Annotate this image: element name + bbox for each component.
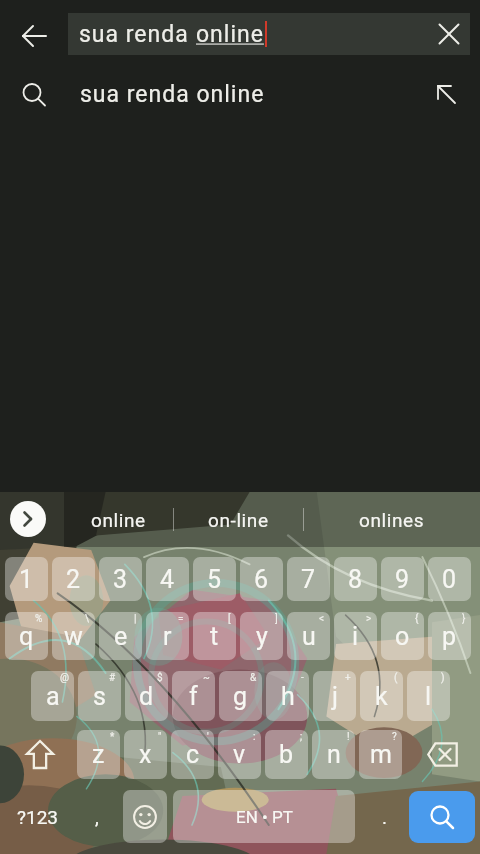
button[interactable]: j bbox=[313, 671, 356, 721]
button[interactable]: d bbox=[125, 671, 168, 721]
button[interactable]: sua renda bbox=[68, 13, 470, 55]
button[interactable]: 9 bbox=[381, 557, 424, 601]
button[interactable]: Back bbox=[10, 12, 58, 60]
button[interactable]: o bbox=[381, 612, 424, 660]
staticText: $ bbox=[157, 672, 163, 684]
staticText: d bbox=[139, 682, 154, 711]
button[interactable]: t bbox=[193, 612, 236, 660]
staticText: 0 bbox=[442, 565, 457, 594]
staticText: ; bbox=[300, 731, 303, 743]
button[interactable]: n bbox=[312, 730, 355, 779]
button[interactable]: sua renda online bbox=[0, 67, 480, 125]
button[interactable]: Search bbox=[409, 791, 475, 843]
staticText: 7 bbox=[301, 565, 316, 594]
button[interactable]: 7 bbox=[287, 557, 330, 601]
staticText: v bbox=[233, 740, 246, 769]
button[interactable]: EN • PT bbox=[173, 790, 355, 843]
button[interactable]: e bbox=[99, 612, 142, 660]
button[interactable]: y bbox=[240, 612, 283, 660]
button[interactable]: h bbox=[266, 671, 309, 721]
staticText: * bbox=[110, 731, 115, 743]
staticText: b bbox=[279, 740, 294, 769]
staticText: a bbox=[46, 682, 60, 711]
staticText: e bbox=[114, 622, 128, 651]
staticText: m bbox=[370, 740, 392, 769]
staticText: online bbox=[91, 509, 146, 531]
button[interactable]: b bbox=[265, 730, 308, 779]
button[interactable]: 1 bbox=[5, 557, 48, 601]
button[interactable]: g bbox=[219, 671, 262, 721]
staticText: online bbox=[196, 21, 264, 48]
staticText: | bbox=[134, 613, 137, 625]
button[interactable]: p bbox=[428, 612, 471, 660]
staticText: + bbox=[345, 672, 351, 684]
button[interactable]: 3 bbox=[99, 557, 142, 601]
button[interactable]: ?123 bbox=[5, 790, 71, 843]
button[interactable]: Emoji bbox=[123, 790, 167, 843]
staticText: \ bbox=[85, 613, 90, 625]
button[interactable]: s bbox=[78, 671, 121, 721]
staticText: ) bbox=[441, 672, 445, 684]
button[interactable]: onlines bbox=[303, 492, 480, 547]
staticText: ?123 bbox=[17, 806, 59, 828]
button[interactable]: c bbox=[171, 730, 214, 779]
button[interactable]: Backspace bbox=[409, 730, 475, 779]
button[interactable]: Clear bbox=[428, 13, 470, 55]
staticText: f bbox=[189, 682, 198, 711]
staticText: c bbox=[186, 740, 200, 769]
button[interactable]: l bbox=[407, 671, 450, 721]
staticText: onlines bbox=[359, 509, 425, 531]
button[interactable]: r bbox=[146, 612, 189, 660]
button[interactable]: 8 bbox=[334, 557, 377, 601]
staticText: g bbox=[233, 682, 248, 711]
button[interactable]: Insert suggestion bbox=[426, 74, 466, 114]
staticText: k bbox=[375, 682, 388, 711]
staticText: y bbox=[256, 622, 268, 651]
button[interactable]: . bbox=[364, 790, 406, 843]
staticText: @ bbox=[60, 672, 69, 684]
staticText: l bbox=[425, 682, 432, 711]
staticText: & bbox=[250, 672, 257, 684]
staticText: . bbox=[382, 806, 388, 828]
button[interactable]: More suggestions bbox=[10, 501, 46, 537]
staticText: w bbox=[64, 622, 83, 651]
staticText: ~ bbox=[203, 672, 210, 684]
staticText: j bbox=[332, 682, 338, 711]
staticText: 5 bbox=[207, 565, 222, 594]
button[interactable]: 4 bbox=[146, 557, 189, 601]
button[interactable]: u bbox=[287, 612, 330, 660]
button[interactable]: q bbox=[5, 612, 48, 660]
staticText: s bbox=[93, 682, 106, 711]
button[interactable]: a bbox=[31, 671, 74, 721]
button[interactable]: on-line bbox=[173, 492, 303, 547]
staticText: : bbox=[253, 731, 256, 743]
staticText: t bbox=[210, 622, 219, 651]
staticText: on-line bbox=[208, 509, 269, 531]
staticText: # bbox=[109, 672, 116, 684]
button[interactable]: v bbox=[218, 730, 261, 779]
button[interactable]: k bbox=[360, 671, 403, 721]
button[interactable]: 5 bbox=[193, 557, 236, 601]
staticText: ? bbox=[392, 731, 397, 743]
staticText: o bbox=[395, 622, 410, 651]
button[interactable]: x bbox=[124, 730, 167, 779]
button[interactable]: , bbox=[76, 790, 118, 843]
button[interactable]: w bbox=[52, 612, 95, 660]
staticText: 6 bbox=[254, 565, 269, 594]
staticText: ! bbox=[347, 731, 350, 743]
button[interactable]: online bbox=[64, 492, 173, 547]
staticText: sua renda bbox=[79, 21, 196, 48]
button[interactable]: f bbox=[172, 671, 215, 721]
button[interactable]: 2 bbox=[52, 557, 95, 601]
button[interactable]: 0 bbox=[428, 557, 471, 601]
button[interactable]: Shift bbox=[5, 730, 75, 779]
staticText: { bbox=[415, 613, 419, 625]
button[interactable]: 6 bbox=[240, 557, 283, 601]
button[interactable]: i bbox=[334, 612, 377, 660]
staticText: % bbox=[35, 613, 43, 625]
staticText: 2 bbox=[66, 565, 81, 594]
button[interactable]: z bbox=[77, 730, 120, 779]
staticText: r bbox=[163, 622, 172, 651]
staticText: q bbox=[19, 622, 34, 651]
button[interactable]: m bbox=[359, 730, 402, 779]
